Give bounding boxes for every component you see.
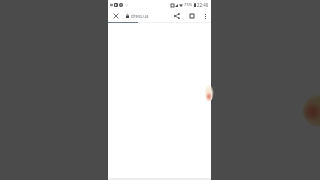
button[interactable]: Share [171, 10, 183, 22]
button[interactable]: Close [111, 11, 121, 21]
staticText: 22:40 [197, 2, 209, 8]
staticText: 75% [184, 2, 193, 8]
button[interactable]: Open in browser [186, 10, 198, 22]
staticText: dress.ua [131, 13, 149, 19]
button[interactable]: More options [200, 11, 211, 22]
